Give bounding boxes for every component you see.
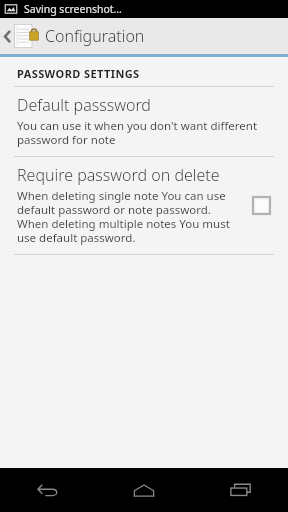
- staticText: Saving screenshot…: [24, 2, 122, 16]
- button[interactable]: Require password on delete: [0, 157, 288, 254]
- staticText: PASSWORD SETTINGS: [17, 66, 140, 81]
- button[interactable]: Default passsword: [0, 87, 288, 156]
- button[interactable]: Home: [96, 468, 192, 512]
- staticText: Require password on delete: [17, 164, 220, 186]
- button[interactable]: Navigate up: [0, 18, 288, 54]
- button[interactable]: Back: [0, 468, 96, 512]
- staticText: Default passsword: [17, 94, 151, 116]
- staticText: You can use it when you don't want diffe…: [17, 118, 258, 147]
- staticText: Configuration: [45, 25, 145, 47]
- button[interactable]: Recent apps: [192, 468, 288, 512]
- button[interactable]: Require password on delete checkbox: [246, 190, 276, 220]
- staticText: When deleting single note You can use de…: [17, 188, 230, 245]
